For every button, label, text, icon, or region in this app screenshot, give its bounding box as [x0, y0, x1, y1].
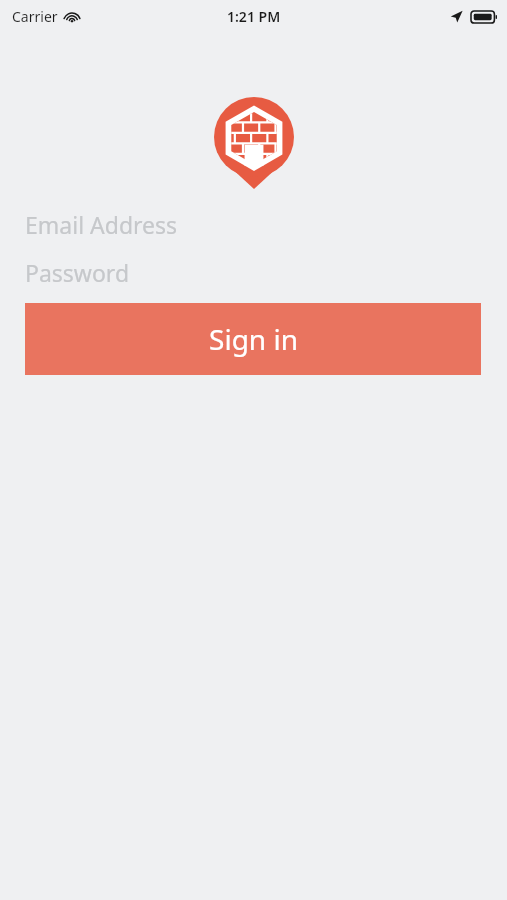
button[interactable]: Email Address: [0, 202, 507, 246]
staticText: Email Address: [25, 209, 178, 240]
staticText: Password: [25, 257, 130, 288]
staticText: Carrier: [12, 7, 58, 26]
button[interactable]: Sign in: [25, 303, 481, 375]
button[interactable]: Password: [0, 250, 507, 294]
staticText: 1:21 PM: [227, 7, 281, 26]
staticText: Sign in: [209, 320, 298, 358]
other: App logo: [214, 97, 294, 189]
